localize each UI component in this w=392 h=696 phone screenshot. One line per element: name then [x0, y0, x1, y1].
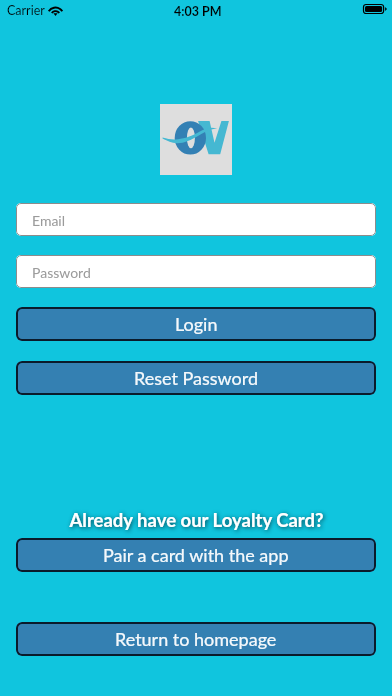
- other: Battery: [363, 4, 387, 14]
- button[interactable]: Return to homepage: [16, 622, 376, 656]
- button[interactable]: Email: [16, 203, 376, 236]
- button[interactable]: Pair a card with the app: [16, 538, 376, 572]
- other: Wi-Fi: [48, 4, 63, 16]
- button[interactable]: Login: [16, 307, 376, 341]
- button[interactable]: Reset Password: [16, 361, 376, 395]
- staticText: Reset Password: [134, 367, 259, 389]
- staticText: Already have our Loyalty Card?: [69, 509, 324, 531]
- staticText: Pair a card with the app: [103, 544, 289, 566]
- staticText: 4:03 PM: [174, 4, 222, 19]
- staticText: Login: [175, 313, 218, 335]
- staticText: Email: [32, 212, 66, 229]
- staticText: Return to homepage: [115, 628, 277, 650]
- button[interactable]: Password: [16, 255, 376, 288]
- staticText: Password: [32, 264, 91, 281]
- staticText: Carrier: [7, 3, 45, 18]
